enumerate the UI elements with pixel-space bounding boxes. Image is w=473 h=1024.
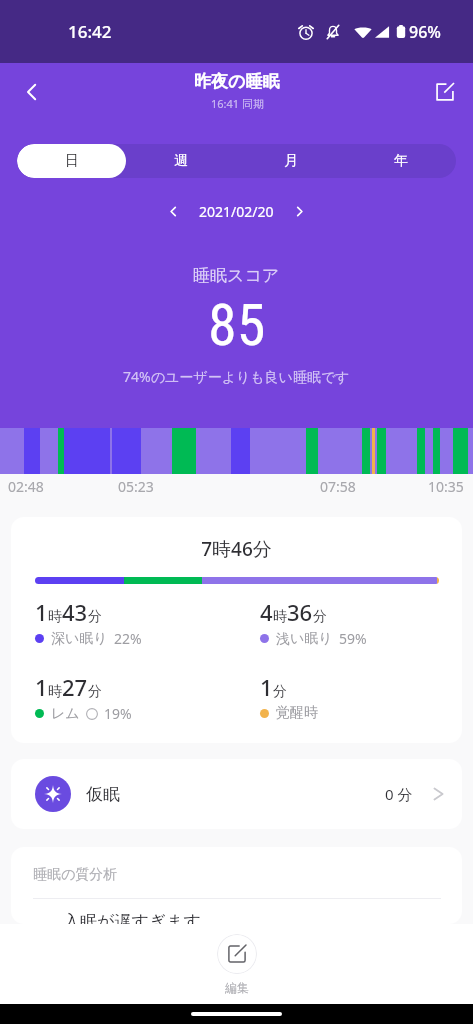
staticText: 分: [273, 683, 287, 701]
staticText: 入眠が遅すぎます: [63, 911, 201, 924]
staticText: 74%のユーザーよりも良い睡眠です: [123, 367, 350, 386]
staticText: 0 分: [385, 784, 413, 804]
staticText: 昨夜の睡眠: [194, 71, 280, 92]
button[interactable]: Back: [10, 70, 54, 114]
staticText: 日: [65, 152, 79, 170]
staticText: 96%: [409, 21, 441, 43]
staticText: 4: [260, 597, 273, 627]
staticText: 分: [88, 683, 102, 701]
staticText: 1: [35, 672, 48, 702]
staticText: 時: [48, 683, 62, 701]
staticText: 2021/02/20: [199, 202, 274, 221]
staticText: 仮眠: [86, 784, 120, 805]
staticText: 週: [174, 152, 188, 170]
button[interactable]: 月: [236, 144, 346, 178]
staticText: 22%: [114, 629, 142, 648]
staticText: 27: [62, 672, 88, 702]
staticText: 時: [273, 608, 287, 626]
staticText: 分: [313, 608, 327, 626]
button[interactable]: 日: [17, 144, 126, 178]
staticText: 43: [62, 597, 88, 627]
staticText: 10:35: [428, 477, 464, 496]
staticText: 59%: [339, 629, 367, 648]
staticText: 月: [284, 152, 298, 170]
staticText: 分: [88, 608, 102, 626]
button[interactable]: 年: [346, 144, 456, 178]
staticText: 1: [35, 597, 48, 627]
staticText: 1: [260, 672, 273, 702]
staticText: 睡眠スコア: [193, 265, 280, 286]
button[interactable]: 仮眠: [11, 759, 462, 829]
staticText: 16:42: [68, 20, 112, 43]
button[interactable]: 2021/02/20: [0, 178, 473, 245]
staticText: 36: [287, 597, 313, 627]
staticText: 年: [394, 152, 408, 170]
staticText: 7時46分: [11, 536, 462, 562]
button[interactable]: Share: [424, 71, 466, 113]
button[interactable]: 編集: [217, 924, 257, 995]
staticText: 02:48: [8, 477, 44, 496]
staticText: 編集: [225, 980, 249, 995]
button[interactable]: 週: [126, 144, 236, 178]
staticText: 深い眠り: [51, 630, 108, 648]
staticText: 時: [48, 608, 62, 626]
staticText: 05:23: [118, 477, 154, 496]
staticText: 85: [208, 291, 266, 359]
staticText: 16:41 同期: [211, 96, 264, 111]
staticText: 覚醒時: [276, 704, 318, 722]
staticText: 睡眠の質分析: [33, 866, 118, 884]
staticText: 07:58: [320, 477, 356, 496]
staticText: レム: [51, 705, 80, 723]
staticText: 浅い眠り: [276, 630, 333, 648]
staticText: 19%: [104, 704, 132, 723]
